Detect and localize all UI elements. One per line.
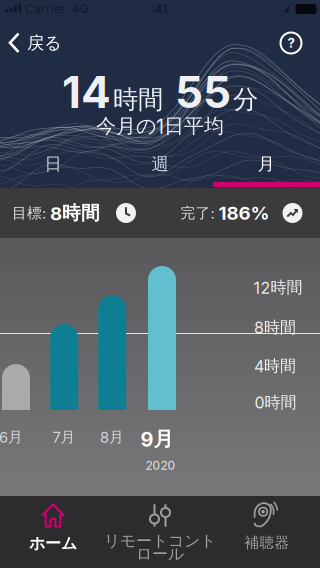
button[interactable]: 週 bbox=[106, 144, 213, 184]
staticText: 55 bbox=[175, 66, 231, 118]
staticText: 9月 bbox=[140, 427, 173, 451]
button[interactable]: 戻る bbox=[0, 24, 62, 62]
staticText: 戻る bbox=[27, 32, 62, 54]
staticText: 6月 bbox=[0, 428, 23, 446]
button[interactable]: リモートコント bbox=[106, 500, 213, 568]
staticText: 8時間 bbox=[50, 201, 100, 224]
staticText: :41 bbox=[150, 2, 167, 16]
staticText: 週 bbox=[151, 153, 168, 175]
button[interactable]: 日 bbox=[0, 144, 106, 184]
staticText: 時間 bbox=[113, 84, 163, 115]
button[interactable]: ホーム bbox=[0, 500, 106, 568]
staticText: 月 bbox=[257, 153, 274, 175]
staticText: 完了: bbox=[180, 204, 218, 222]
staticText: 4時間 bbox=[254, 356, 296, 376]
staticText: 8月 bbox=[100, 428, 124, 446]
staticText: 目標: bbox=[12, 204, 50, 222]
staticText: 分 bbox=[233, 84, 258, 115]
button[interactable]: 補聴器 bbox=[214, 500, 320, 568]
button[interactable]: ヘルプ bbox=[272, 24, 310, 62]
staticText: Carrier 4G bbox=[25, 2, 89, 16]
staticText: ロール bbox=[136, 544, 184, 564]
staticText: 2020 bbox=[145, 458, 175, 473]
staticText: ? bbox=[287, 35, 294, 51]
staticText: 今月の1日平均 bbox=[96, 114, 224, 138]
staticText: 0時間 bbox=[255, 392, 297, 412]
staticText: 補聴器 bbox=[244, 533, 289, 551]
staticText: 8時間 bbox=[254, 317, 296, 337]
staticText: 12時間 bbox=[253, 278, 302, 297]
staticText: 日 bbox=[44, 153, 61, 175]
staticText: 7月 bbox=[52, 428, 75, 446]
staticText: 14 bbox=[62, 66, 111, 118]
staticText: 186% bbox=[218, 202, 269, 224]
staticText: リモートコント bbox=[104, 531, 216, 551]
button[interactable]: 月 bbox=[213, 144, 319, 184]
staticText: ホーム bbox=[29, 534, 77, 553]
